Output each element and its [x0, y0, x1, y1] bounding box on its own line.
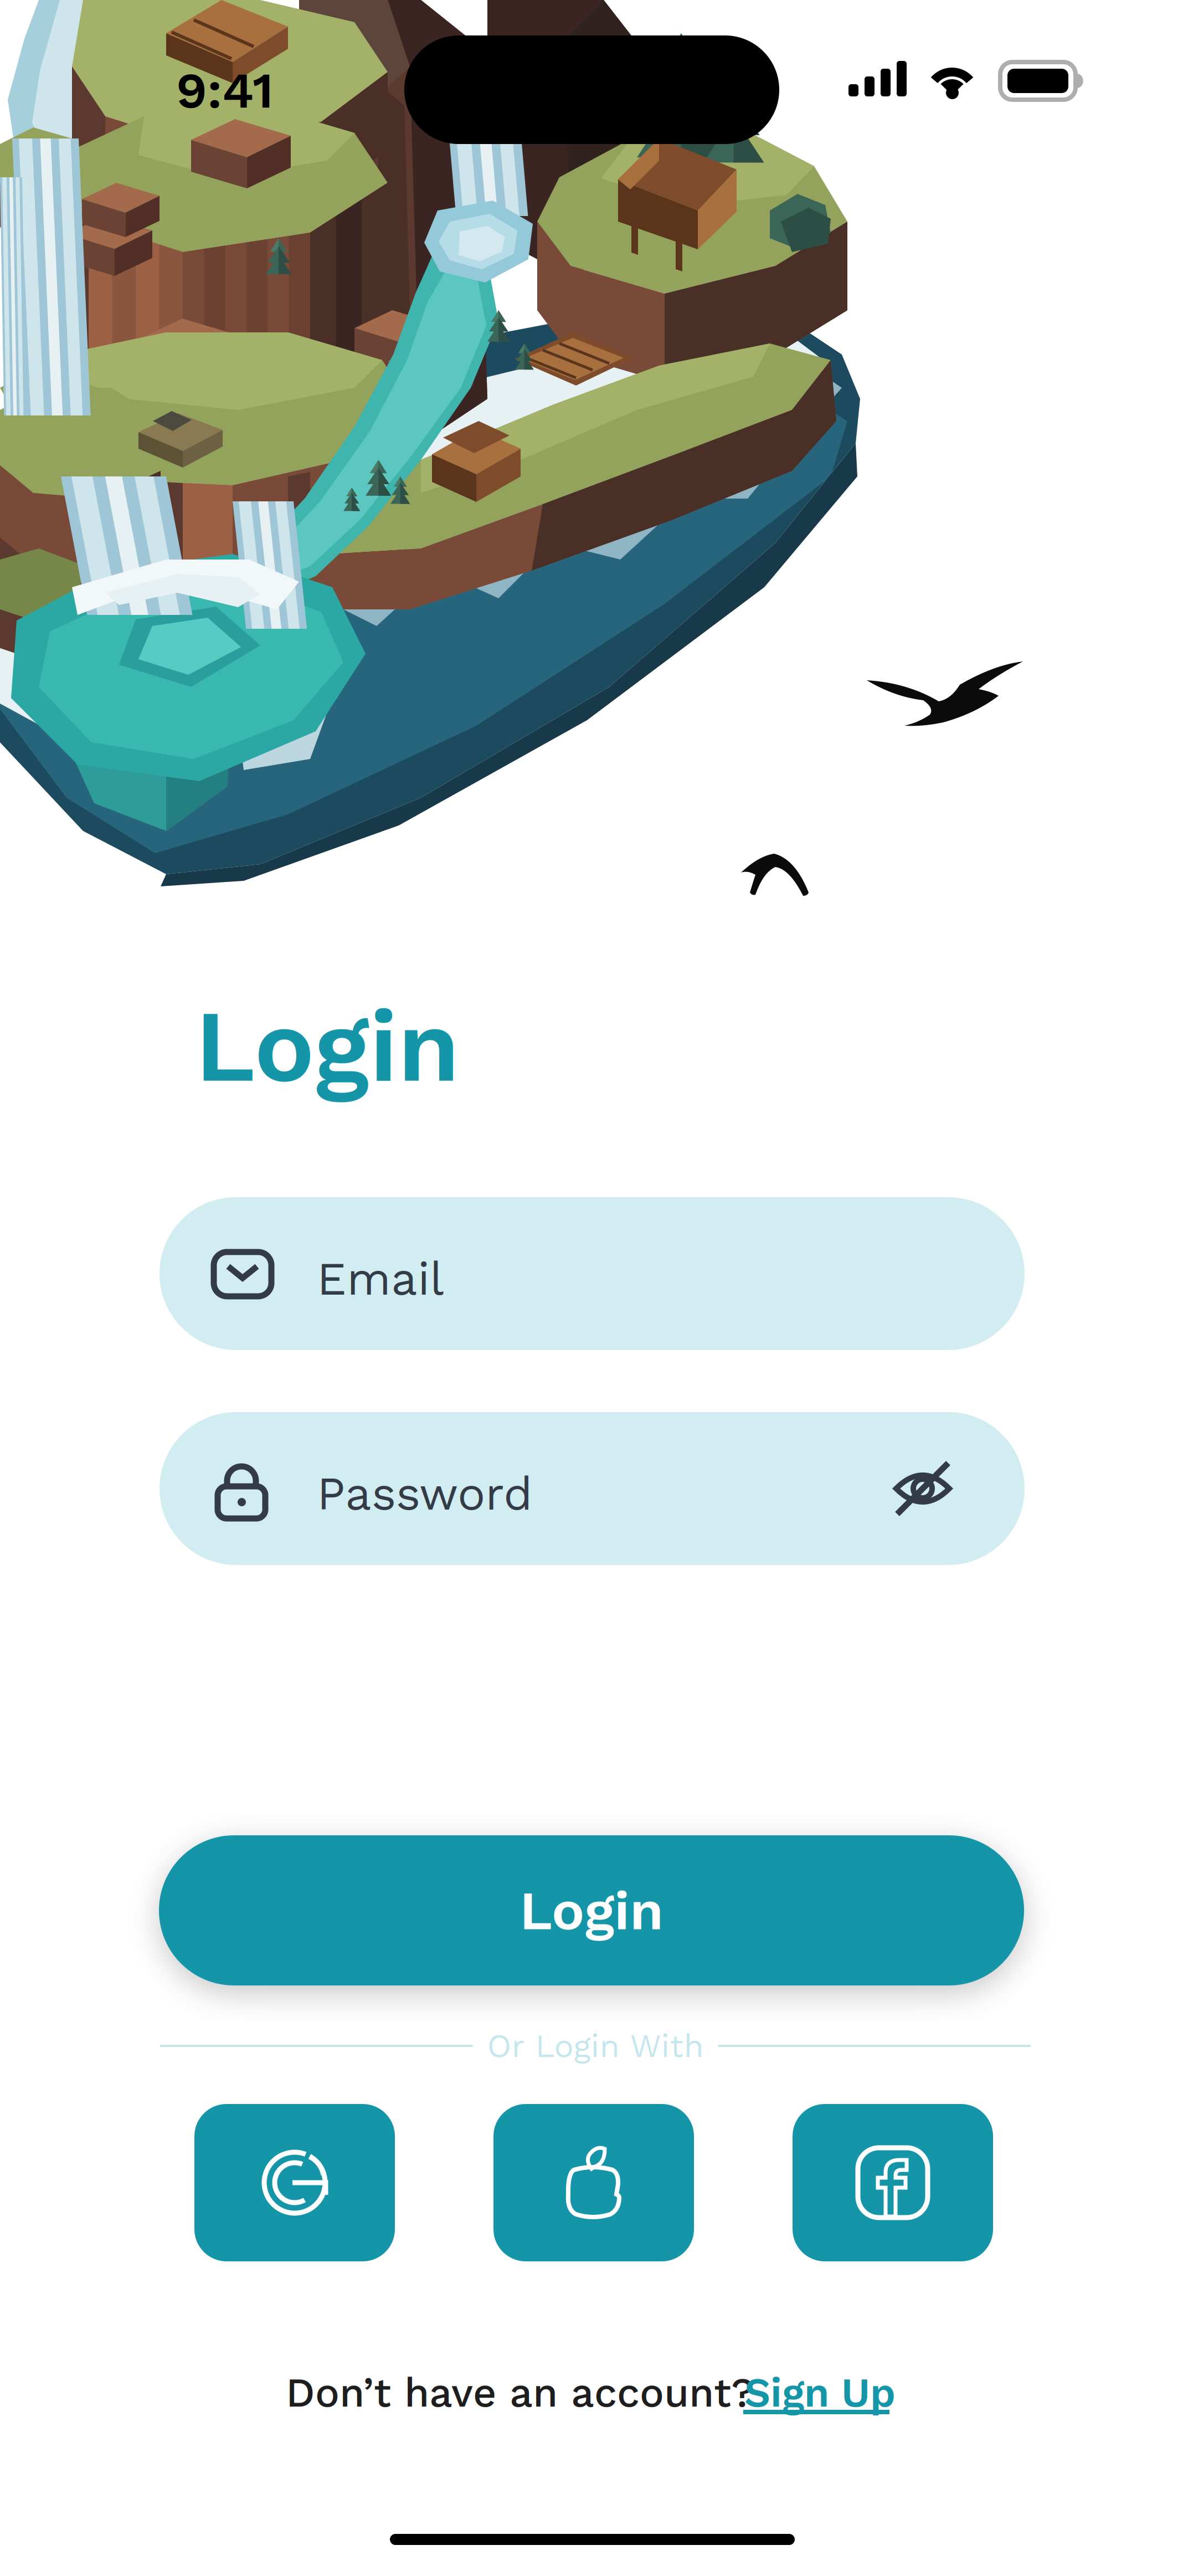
button[interactable]: Sign in with Apple	[493, 2104, 694, 2261]
button[interactable]: Password	[160, 1412, 1025, 1565]
button[interactable]: Email	[160, 1197, 1025, 1350]
staticText: Sign Up	[744, 2369, 896, 2416]
button[interactable]: Login	[159, 1835, 1024, 1985]
staticText: Don’t have an account?	[286, 2369, 754, 2416]
staticText: Login	[520, 1878, 663, 1942]
staticText: Login	[195, 987, 460, 1105]
staticText: Password	[317, 1466, 533, 1521]
staticText: 9:41	[176, 61, 274, 120]
button[interactable]: Sign Up	[744, 2369, 899, 2416]
button[interactable]: Sign in with Facebook	[793, 2104, 993, 2261]
button[interactable]: Sign in with Google	[194, 2104, 395, 2261]
staticText: Email	[317, 1251, 444, 1306]
staticText: Or Login With	[487, 2027, 704, 2065]
